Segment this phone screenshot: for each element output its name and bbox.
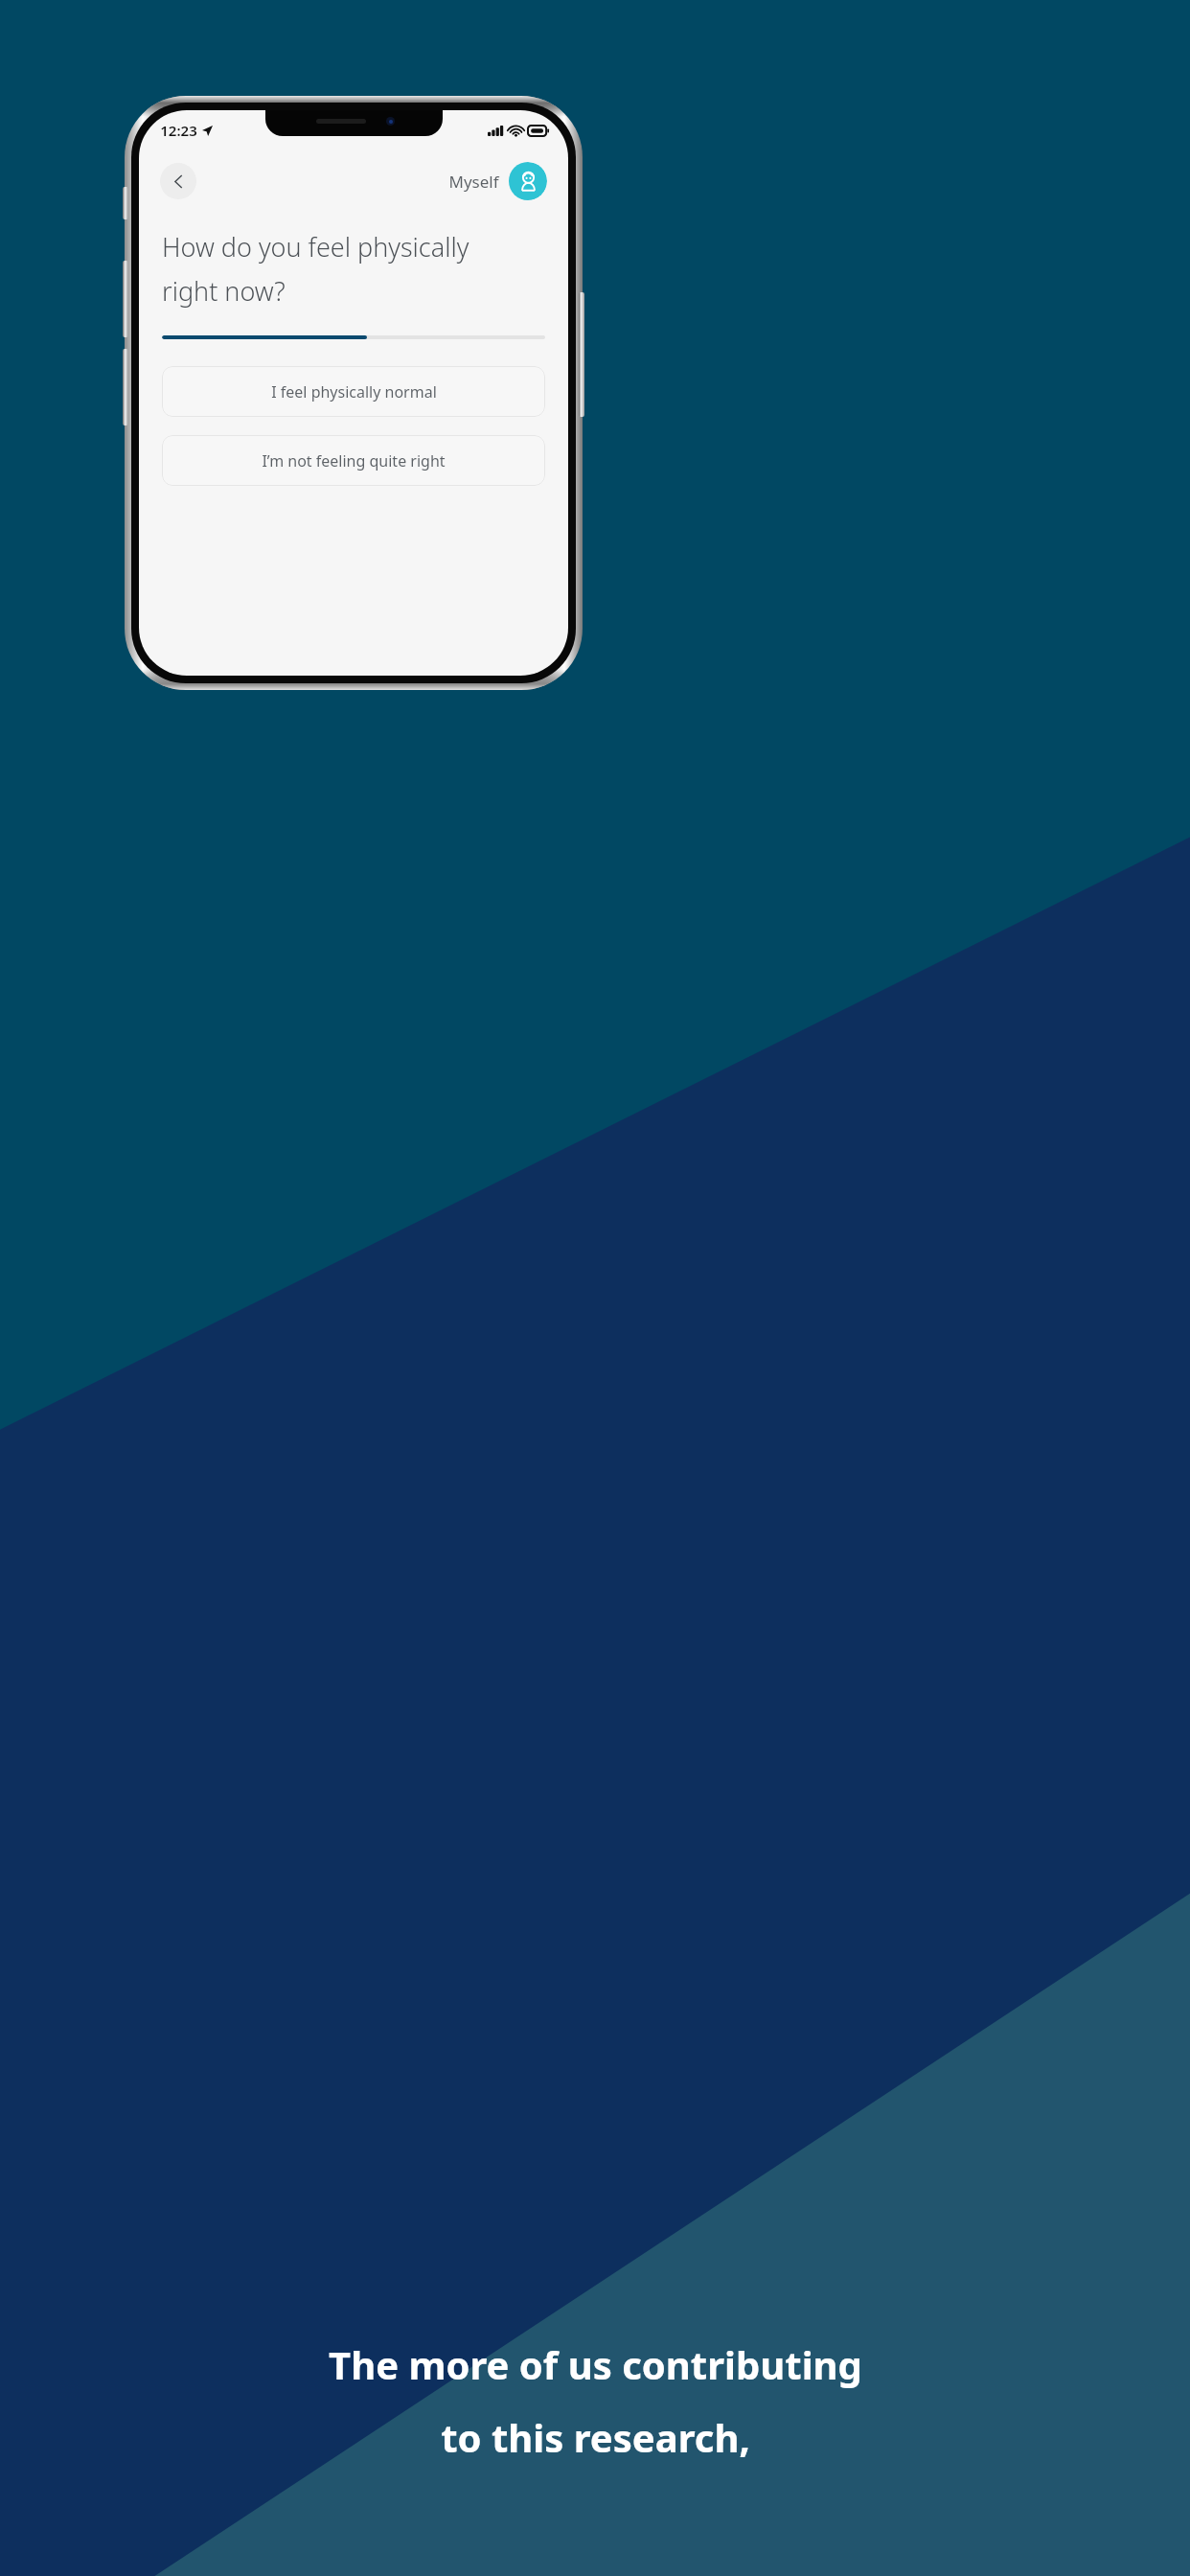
button[interactable]: Myself (448, 162, 547, 200)
button[interactable]: I feel physically normal (162, 366, 545, 417)
button[interactable]: I’m not feeling quite right (162, 435, 545, 486)
staticText: to this research, (441, 2411, 750, 2463)
staticText: I’m not feeling quite right (262, 450, 446, 471)
staticText: The more of us contributing (329, 2338, 862, 2390)
staticText: I feel physically normal (271, 381, 437, 402)
staticText: How do you feel physically (162, 229, 469, 264)
button[interactable]: Back (160, 163, 196, 199)
staticText: 12:23 (160, 121, 197, 140)
staticText: Myself (448, 171, 499, 193)
staticText: right now? (162, 273, 286, 309)
